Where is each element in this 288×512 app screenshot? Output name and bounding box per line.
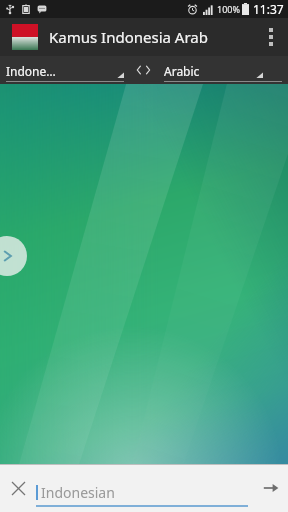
- button[interactable]: Search: [254, 464, 288, 512]
- button[interactable]: Indonesian: [6, 56, 124, 84]
- staticText: Indonesian: [41, 483, 115, 502]
- button[interactable]: Arabic: [164, 56, 282, 84]
- staticText: Indonesian: [6, 63, 61, 79]
- button[interactable]: Open panel: [0, 236, 27, 276]
- button[interactable]: Indonesian: [36, 464, 248, 512]
- staticText: Arabic: [164, 63, 200, 79]
- staticText: 11:37: [253, 1, 284, 17]
- button[interactable]: Swap languages: [126, 56, 162, 84]
- staticText: 100%: [217, 3, 240, 15]
- button[interactable]: More options: [254, 18, 288, 56]
- button[interactable]: Clear: [0, 464, 36, 512]
- staticText: Kamus Indonesia Arab: [49, 27, 208, 47]
